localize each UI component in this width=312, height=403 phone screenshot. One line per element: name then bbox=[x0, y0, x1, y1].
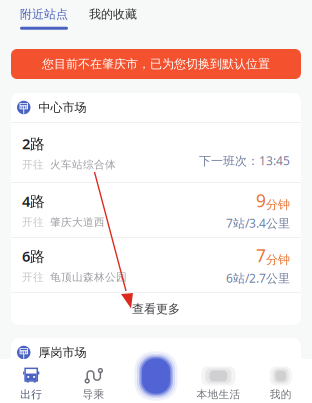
staticText: 分钟 bbox=[266, 252, 290, 267]
staticText: 附近站点 bbox=[20, 7, 68, 22]
button[interactable]: 查看更多 bbox=[11, 293, 301, 325]
staticText: 6路 bbox=[22, 246, 45, 266]
staticText: 7 bbox=[256, 244, 266, 267]
button[interactable]: 扫一扫 bbox=[125, 359, 187, 403]
staticText: 您目前不在肇庆市，已为您切换到默认位置 bbox=[42, 57, 270, 71]
button[interactable]: 我的收藏 bbox=[89, 7, 137, 30]
staticText: 导乘 bbox=[83, 388, 105, 401]
button[interactable]: 附近站点 bbox=[20, 7, 68, 30]
button[interactable]: 2路 bbox=[11, 123, 301, 182]
staticText: 本地生活 bbox=[196, 388, 240, 401]
staticText: 中心市场 bbox=[38, 100, 86, 115]
staticText: 出行 bbox=[20, 388, 42, 401]
button[interactable]: 4路 bbox=[11, 183, 301, 237]
staticText: 查看更多 bbox=[132, 302, 180, 316]
button[interactable]: 6路 bbox=[11, 238, 301, 292]
staticText: 龟顶山森林公园 bbox=[50, 271, 127, 284]
staticText: 下一班次：13:45 bbox=[199, 152, 290, 168]
staticText: 肇庆大道西 bbox=[50, 216, 105, 229]
staticText: 开往 bbox=[22, 216, 44, 229]
button[interactable]: 出行 bbox=[0, 359, 62, 403]
staticText: 我的 bbox=[270, 388, 292, 401]
button[interactable]: 我的 bbox=[250, 359, 312, 403]
button[interactable]: 导乘 bbox=[62, 359, 125, 403]
staticText: 开往 bbox=[22, 271, 44, 284]
staticText: 4路 bbox=[22, 191, 45, 211]
staticText: 7站/3.4公里 bbox=[226, 215, 290, 231]
staticText: 我的收藏 bbox=[89, 7, 137, 22]
staticText: 2路 bbox=[22, 134, 45, 153]
staticText: 分钟 bbox=[266, 197, 290, 212]
staticText: 厚岗市场 bbox=[38, 345, 86, 360]
staticText: 9 bbox=[256, 189, 266, 212]
staticText: 6站/2.7公里 bbox=[226, 270, 290, 286]
staticText: 开往 bbox=[22, 158, 44, 171]
staticText: 火车站综合体 bbox=[50, 158, 116, 171]
button[interactable]: 本地生活 bbox=[187, 359, 250, 403]
